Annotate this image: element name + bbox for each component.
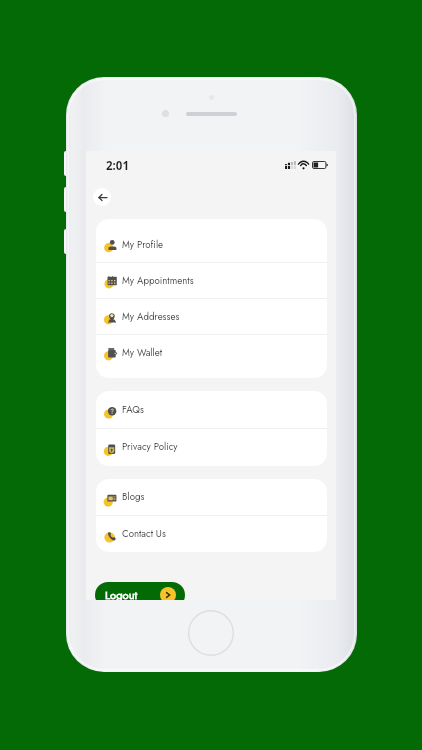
staticText: My Wallet: [122, 346, 163, 360]
button[interactable]: Contact Us: [96, 516, 327, 552]
staticText: Privacy Policy: [122, 440, 178, 454]
button[interactable]: My Wallet: [96, 335, 327, 370]
button[interactable]: FAQs: [96, 392, 327, 428]
button[interactable]: My Addresses: [96, 299, 327, 334]
staticText: My Appointments: [122, 274, 194, 288]
staticText: My Profile: [122, 238, 164, 252]
button[interactable]: My Appointments: [96, 263, 327, 298]
button[interactable]: Privacy Policy: [96, 429, 327, 465]
staticText: 2:01: [106, 158, 129, 174]
button[interactable]: My Profile: [96, 227, 327, 262]
staticText: Blogs: [122, 490, 145, 504]
staticText: FAQs: [122, 403, 144, 417]
button[interactable]: Blogs: [96, 479, 327, 515]
button[interactable]: Back: [93, 188, 111, 206]
staticText: Contact Us: [122, 527, 166, 541]
staticText: Logout: [105, 587, 138, 600]
button[interactable]: Logout: [95, 582, 185, 600]
staticText: My Addresses: [122, 310, 180, 324]
